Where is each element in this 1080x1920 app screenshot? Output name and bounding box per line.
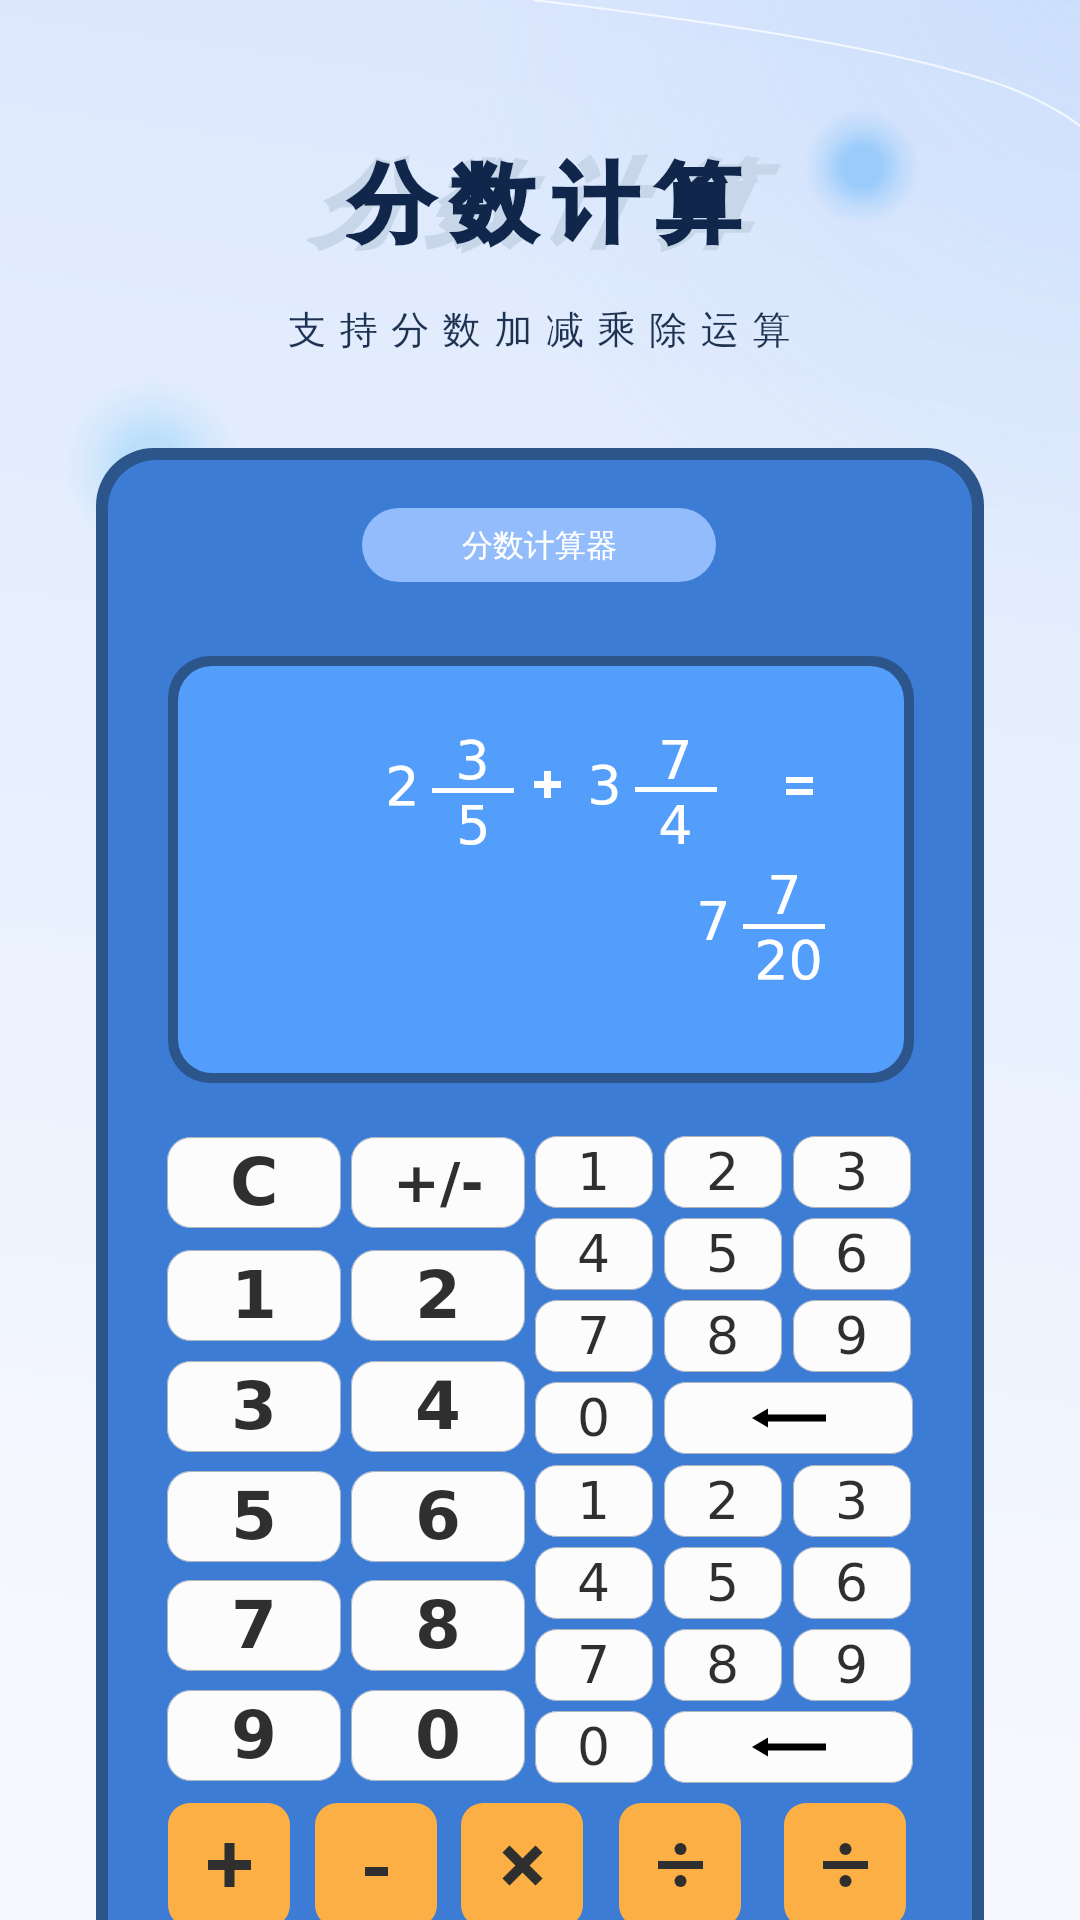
staticText: 8 xyxy=(706,1306,740,1367)
staticText: 1 xyxy=(577,1142,611,1203)
staticText: 5 xyxy=(706,1553,740,1614)
button[interactable]: 0 xyxy=(535,1382,653,1454)
button[interactable]: 7 xyxy=(535,1300,653,1372)
staticText: 2 xyxy=(415,1257,461,1334)
button[interactable]: 1 xyxy=(535,1136,653,1208)
button[interactable]: 3 xyxy=(167,1361,341,1452)
staticText: 7 xyxy=(577,1306,611,1367)
button[interactable]: 6 xyxy=(351,1471,525,1562)
button[interactable]: 7 xyxy=(167,1580,341,1671)
button[interactable]: 8 xyxy=(664,1629,782,1701)
staticText: 6 xyxy=(415,1478,461,1555)
staticText: 7 xyxy=(767,864,802,927)
button[interactable]: 1 xyxy=(167,1250,341,1341)
button[interactable]: 5 xyxy=(664,1547,782,1619)
button[interactable]: 8 xyxy=(664,1300,782,1372)
button[interactable]: 3 xyxy=(793,1136,911,1208)
button[interactable]: 7 xyxy=(535,1629,653,1701)
staticText: 3 xyxy=(231,1368,277,1445)
staticText: 1 xyxy=(231,1257,277,1334)
button[interactable]: 2 xyxy=(664,1136,782,1208)
staticText: 20 xyxy=(754,929,823,992)
staticText: C xyxy=(230,1144,279,1221)
staticText: +/- xyxy=(393,1150,484,1215)
staticText: 2 xyxy=(706,1142,740,1203)
staticText: 7 xyxy=(231,1587,277,1664)
staticText: 5 xyxy=(706,1224,740,1285)
staticText: 8 xyxy=(415,1587,461,1664)
button[interactable]: Backspace xyxy=(664,1711,913,1783)
button[interactable]: 3 xyxy=(793,1465,911,1537)
button[interactable]: Divide xyxy=(784,1803,906,1920)
staticText: 0 xyxy=(577,1388,611,1449)
staticText: 3 xyxy=(835,1471,869,1532)
button[interactable]: 0 xyxy=(535,1711,653,1783)
button[interactable]: Divide xyxy=(619,1803,741,1920)
staticText: 7 xyxy=(577,1635,611,1696)
staticText: 5 xyxy=(456,794,491,857)
staticText: 分数计算 xyxy=(0,147,1080,264)
button[interactable]: +/- xyxy=(351,1137,525,1228)
button[interactable]: Add xyxy=(168,1803,290,1920)
button[interactable]: 分数计算器 xyxy=(362,508,716,582)
staticText: 7 xyxy=(658,729,693,792)
button[interactable]: 4 xyxy=(351,1361,525,1452)
staticText: 4 xyxy=(577,1224,611,1285)
staticText: 9 xyxy=(231,1697,277,1774)
staticText: 9 xyxy=(835,1635,869,1696)
staticText: 5 xyxy=(231,1478,277,1555)
button[interactable]: C xyxy=(167,1137,341,1228)
button[interactable]: 2 xyxy=(664,1465,782,1537)
staticText: 0 xyxy=(577,1717,611,1778)
staticText: 分数计算 xyxy=(13,151,1080,258)
staticText: 4 xyxy=(658,794,693,857)
button[interactable]: 5 xyxy=(167,1471,341,1562)
staticText: 3 xyxy=(455,729,490,792)
staticText: 支持分数加减乘除运算 xyxy=(6,306,1080,354)
button[interactable]: 0 xyxy=(351,1690,525,1781)
button[interactable]: 9 xyxy=(793,1629,911,1701)
staticText: 2 xyxy=(706,1471,740,1532)
button[interactable]: 4 xyxy=(535,1218,653,1290)
staticText: 7 xyxy=(696,890,731,953)
button[interactable]: 6 xyxy=(793,1218,911,1290)
staticText: 3 xyxy=(835,1142,869,1203)
button[interactable]: 4 xyxy=(535,1547,653,1619)
button[interactable]: 6 xyxy=(793,1547,911,1619)
button[interactable]: 9 xyxy=(167,1690,341,1781)
button[interactable]: 1 xyxy=(535,1465,653,1537)
button[interactable]: 5 xyxy=(664,1218,782,1290)
staticText: 9 xyxy=(835,1306,869,1367)
staticText: 3 xyxy=(587,754,622,817)
button[interactable]: Backspace xyxy=(664,1382,913,1454)
button[interactable]: 2 xyxy=(351,1250,525,1341)
button[interactable]: Multiply xyxy=(461,1803,583,1920)
button[interactable]: 9 xyxy=(793,1300,911,1372)
button[interactable]: 8 xyxy=(351,1580,525,1671)
staticText: 8 xyxy=(706,1635,740,1696)
staticText: 4 xyxy=(577,1553,611,1614)
staticText: 4 xyxy=(415,1368,461,1445)
staticText: 2 xyxy=(385,755,420,818)
staticText: 1 xyxy=(577,1471,611,1532)
staticText: 6 xyxy=(835,1553,869,1614)
staticText: 6 xyxy=(835,1224,869,1285)
staticText: 0 xyxy=(415,1697,461,1774)
button[interactable]: Subtract xyxy=(315,1803,437,1920)
staticText: 分数计算器 xyxy=(462,526,617,565)
